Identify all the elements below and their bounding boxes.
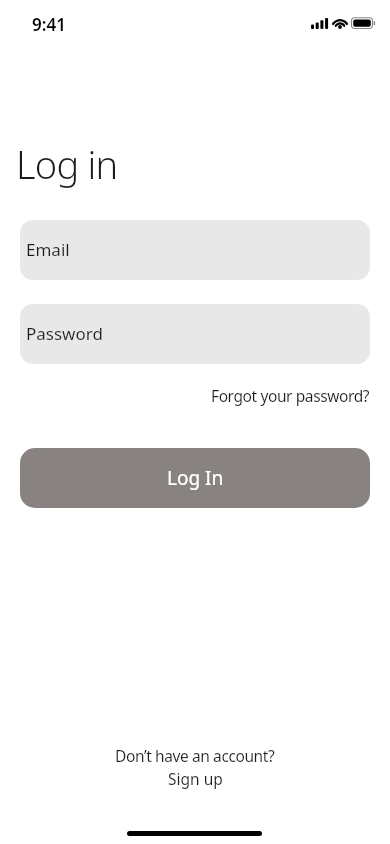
button[interactable]: Email <box>20 220 370 280</box>
staticText: Log in <box>16 138 118 190</box>
staticText: 9:41 <box>32 13 66 36</box>
button[interactable]: Password <box>20 304 370 364</box>
button[interactable]: Sign up <box>168 768 223 789</box>
button[interactable]: Log In <box>20 448 370 508</box>
staticText: Email <box>26 238 70 261</box>
button[interactable]: Forgot your password? <box>211 385 370 406</box>
staticText: Log In <box>167 465 224 491</box>
staticText: Password <box>26 322 103 345</box>
staticText: Don’t have an account? <box>115 745 275 766</box>
